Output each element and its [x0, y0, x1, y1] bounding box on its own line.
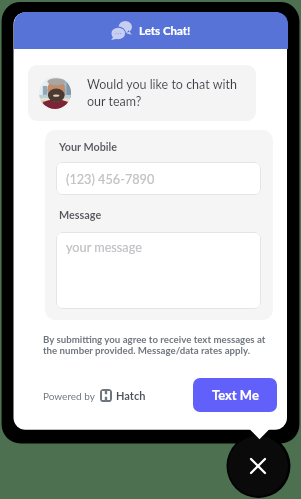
button[interactable]: Close chat [228, 436, 288, 496]
staticText: Hatch [116, 389, 146, 402]
button[interactable]: Text Me [193, 378, 277, 412]
staticText: Your Mobile [59, 140, 118, 153]
staticText: Text Me [212, 387, 259, 403]
button[interactable]: (123) 456-7890 [56, 162, 261, 195]
button[interactable]: your message [56, 232, 261, 309]
staticText: By submitting you agree to receive text … [43, 333, 274, 356]
staticText: Powered by [43, 390, 95, 402]
button[interactable]: Would you like to chat with our team? [28, 65, 256, 121]
staticText: Lets Chat! [139, 24, 191, 38]
staticText: Message [59, 208, 102, 221]
staticText: Would you like to chat with our team? [87, 77, 242, 109]
button[interactable]: Lets Chat! [14, 12, 288, 49]
staticText: (123) 456-7890 [66, 171, 155, 186]
staticText: your message [66, 239, 142, 254]
